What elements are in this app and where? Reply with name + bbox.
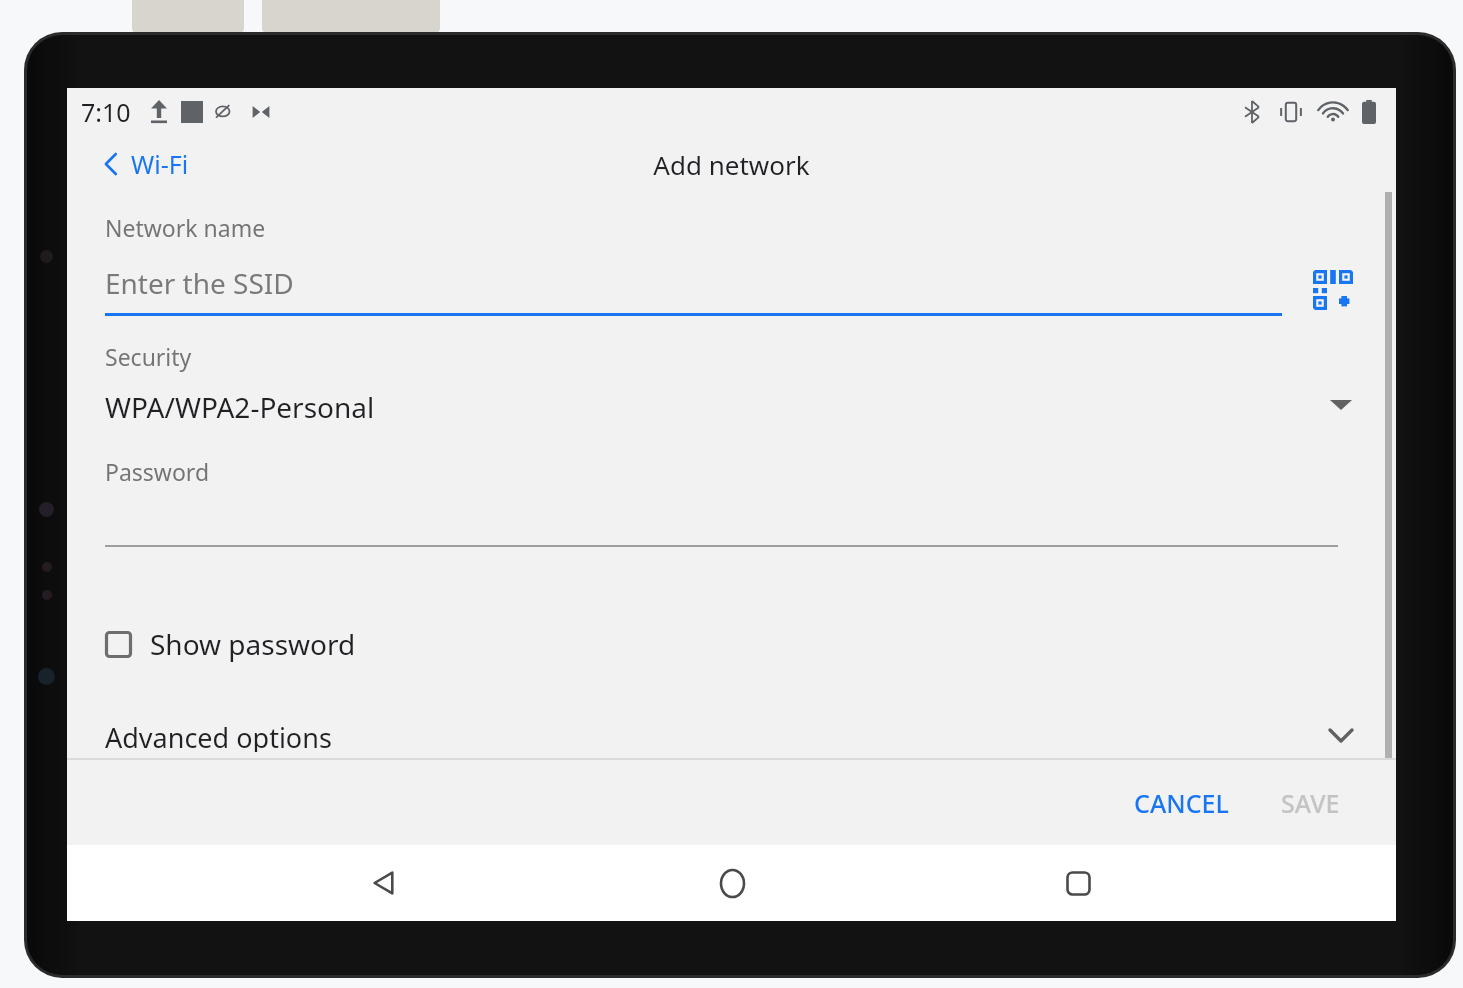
button[interactable]: CANCEL xyxy=(1120,776,1243,830)
button[interactable]: Back xyxy=(356,854,414,912)
staticText: 7:10 xyxy=(81,95,131,129)
staticText: SAVE xyxy=(1281,786,1340,820)
staticText: Advanced options xyxy=(105,719,1340,752)
button[interactable]: Recent apps xyxy=(1049,854,1107,912)
staticText: Password xyxy=(105,456,210,487)
button[interactable]: Enter the SSID xyxy=(105,264,1282,316)
staticText: Security xyxy=(105,341,192,372)
staticText: Show password xyxy=(150,625,356,663)
button[interactable]: Wi-Fi xyxy=(97,141,195,187)
button[interactable]: Home xyxy=(703,854,761,912)
staticText: Enter the SSID xyxy=(105,264,294,302)
button[interactable]: Show password xyxy=(105,619,356,669)
button[interactable]: SAVE xyxy=(1267,776,1354,830)
staticText: Add network xyxy=(653,147,810,182)
button[interactable]: WPA/WPA2-Personal xyxy=(105,388,1366,426)
button[interactable]: Scan QR code xyxy=(1306,263,1360,317)
staticText: WPA/WPA2-Personal xyxy=(105,388,1344,426)
staticText: Wi-Fi xyxy=(131,147,189,181)
staticText: Network name xyxy=(105,212,266,243)
button[interactable]: Advanced options xyxy=(105,713,1366,758)
staticText: CANCEL xyxy=(1134,786,1229,820)
